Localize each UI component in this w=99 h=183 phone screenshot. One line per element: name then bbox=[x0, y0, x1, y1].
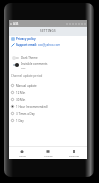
button[interactable]: 12 Min bbox=[9, 89, 87, 96]
staticText: Support email: bbox=[16, 43, 38, 47]
staticText: Channel update period bbox=[11, 74, 43, 78]
staticText: Invisible comments bbox=[21, 62, 48, 66]
staticText: Home bbox=[19, 154, 26, 157]
staticText: Dark Theme bbox=[21, 56, 38, 60]
button[interactable]: Manual update bbox=[9, 82, 87, 89]
button[interactable]: 30 Min bbox=[9, 96, 87, 103]
staticText: 30 Min bbox=[16, 98, 26, 102]
staticText: Privacy policy bbox=[16, 37, 36, 41]
staticText: 3 Times a Day bbox=[16, 112, 35, 116]
button[interactable]: Privacy policy bbox=[9, 36, 87, 42]
staticText: xxx@yahoo.com bbox=[38, 43, 61, 47]
button[interactable]: 1 Hour (recommended) bbox=[9, 103, 87, 110]
staticText: 12 Min bbox=[16, 91, 26, 95]
button[interactable]: Support email bbox=[9, 42, 87, 48]
staticText: OFF bbox=[21, 66, 26, 69]
staticText: SETTINGS bbox=[40, 29, 56, 33]
staticText: 4:35 bbox=[13, 22, 19, 26]
staticText: Favorites bbox=[69, 154, 80, 157]
button[interactable]: Favorites bbox=[61, 147, 87, 159]
button[interactable]: 1 Day bbox=[9, 117, 87, 124]
staticText: 1 Day bbox=[16, 119, 24, 123]
button[interactable]: 3 Times a Day bbox=[9, 110, 87, 117]
staticText: Manual update bbox=[16, 84, 37, 88]
button[interactable]: Dark Theme bbox=[9, 55, 87, 61]
button[interactable]: Invisible comments bbox=[9, 61, 87, 69]
button[interactable]: Home bbox=[9, 147, 35, 159]
staticText: Catalog bbox=[44, 154, 53, 157]
button[interactable]: Catalog bbox=[35, 147, 61, 159]
staticText: 1 Hour (recommended) bbox=[16, 105, 48, 109]
other: Privacy policy bbox=[11, 37, 15, 41]
other: Support email bbox=[11, 43, 15, 47]
